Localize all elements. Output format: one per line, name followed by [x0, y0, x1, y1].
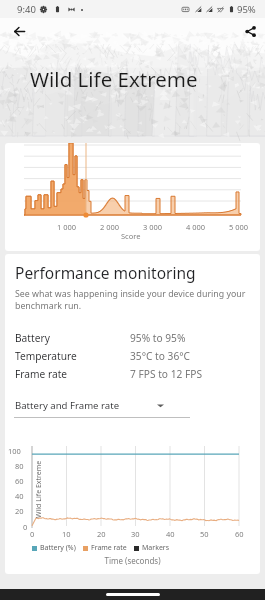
staticText: 80: [15, 461, 24, 471]
staticText: 50: [200, 529, 209, 539]
staticText: 95%: [237, 3, 256, 16]
button[interactable]: Battery: [5, 329, 260, 347]
staticText: Markers: [142, 543, 170, 553]
staticText: 100: [8, 446, 21, 456]
button[interactable]: Frame rate: [5, 365, 260, 383]
staticText: 40: [166, 529, 175, 539]
staticText: 60: [15, 476, 24, 486]
staticText: See what was happening inside your devic…: [15, 288, 248, 312]
staticText: 7 FPS to 12 FPS: [130, 367, 203, 381]
staticText: Wild Life Extreme: [30, 65, 198, 93]
staticText: 35°C to 36°C: [130, 349, 191, 363]
staticText: Battery (%): [40, 543, 76, 553]
staticText: 3 000: [143, 222, 163, 232]
staticText: Frame rate: [91, 543, 127, 553]
button[interactable]: Share: [239, 20, 261, 42]
staticText: 30: [131, 529, 140, 539]
staticText: Time (seconds): [5, 555, 260, 566]
staticText: 4 000: [186, 222, 206, 232]
staticText: Battery: [15, 331, 50, 345]
staticText: 20: [97, 529, 106, 539]
staticText: 9:40: [17, 3, 36, 16]
staticText: 40: [15, 491, 24, 501]
button[interactable]: Back: [8, 20, 30, 42]
staticText: 5 000: [229, 222, 249, 232]
staticText: Wild Life Extreme: [34, 460, 44, 518]
staticText: 60: [235, 529, 244, 539]
staticText: 0: [23, 522, 28, 532]
staticText: 2 000: [100, 222, 120, 232]
staticText: Score: [121, 231, 141, 241]
staticText: 10: [62, 529, 71, 539]
staticText: 95% to 95%: [130, 331, 186, 345]
staticText: 0: [30, 529, 35, 539]
staticText: Frame rate: [15, 367, 68, 381]
staticText: 1 000: [57, 222, 77, 232]
staticText: 20: [15, 506, 24, 516]
staticText: Performance monitoring: [15, 262, 196, 283]
staticText: Temperature: [15, 349, 77, 363]
staticText: Battery and Frame rate: [15, 399, 120, 412]
button[interactable]: Battery and Frame rate: [14, 396, 195, 417]
button[interactable]: Temperature: [5, 347, 260, 365]
